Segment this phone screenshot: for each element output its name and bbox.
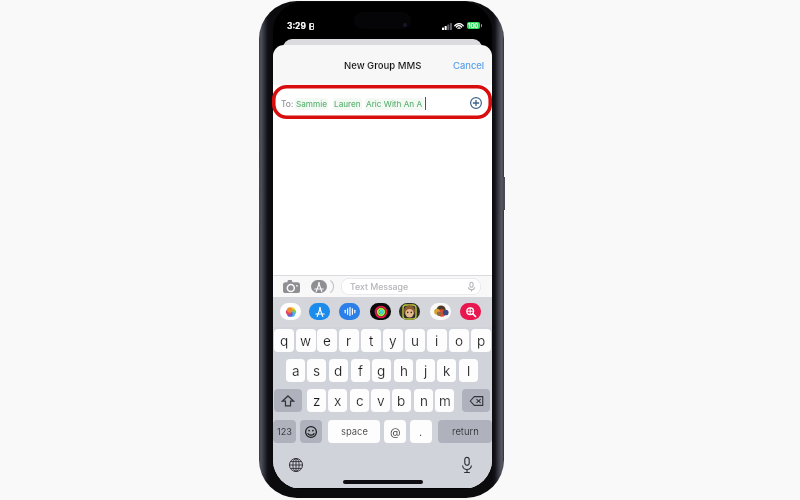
button[interactable]: r xyxy=(339,329,359,352)
staticText: return xyxy=(452,426,479,437)
button[interactable]: v xyxy=(371,389,390,412)
button[interactable]: e xyxy=(317,329,337,352)
staticText: 123 xyxy=(277,426,293,437)
staticText: u xyxy=(411,333,419,349)
button[interactable]: t xyxy=(361,329,381,352)
staticText: o xyxy=(455,333,464,349)
staticText: Aric With An A xyxy=(366,99,423,109)
staticText: e xyxy=(323,333,331,349)
button[interactable]: Sammie xyxy=(296,99,327,109)
button[interactable]: s xyxy=(307,359,326,382)
staticText: a xyxy=(292,363,300,379)
staticText: d xyxy=(334,363,343,379)
button[interactable]: i xyxy=(427,329,447,352)
button[interactable]: Space xyxy=(328,420,380,443)
button[interactable]: Text Message xyxy=(341,278,481,295)
staticText: y xyxy=(389,333,397,349)
staticText: t xyxy=(369,333,374,349)
button[interactable]: Cancel xyxy=(445,56,492,75)
staticText: n xyxy=(420,393,428,409)
button[interactable]: h xyxy=(394,359,413,382)
staticText: v xyxy=(377,393,385,409)
staticText: 3:29 xyxy=(287,21,306,31)
button[interactable]: Search xyxy=(460,303,481,320)
staticText: x xyxy=(334,393,342,409)
button[interactable]: m xyxy=(435,389,454,412)
staticText: f xyxy=(358,363,363,379)
staticText: c xyxy=(356,393,364,409)
button[interactable]: g xyxy=(372,359,391,382)
staticText: k xyxy=(443,363,451,379)
button[interactable]: Recent Photos xyxy=(430,303,451,320)
staticText: To: xyxy=(281,99,294,109)
button[interactable]: d xyxy=(329,359,348,382)
button[interactable]: k xyxy=(437,359,456,382)
button[interactable]: Audio Message xyxy=(339,303,360,320)
button[interactable]: j xyxy=(416,359,435,382)
staticText: z xyxy=(313,393,321,409)
staticText: m xyxy=(439,393,451,409)
button[interactable]: y xyxy=(383,329,403,352)
button[interactable]: p xyxy=(471,329,491,352)
button[interactable]: Backspace xyxy=(462,389,490,412)
staticText: h xyxy=(400,363,408,379)
button[interactable]: b xyxy=(392,389,411,412)
staticText: space xyxy=(341,426,368,437)
button[interactable]: Change keyboard xyxy=(289,458,303,472)
button[interactable]: Shift xyxy=(274,389,302,412)
staticText: w xyxy=(300,333,312,349)
staticText: . xyxy=(419,425,423,438)
button[interactable]: Dictation xyxy=(462,457,472,473)
button[interactable]: u xyxy=(405,329,425,352)
button[interactable]: Period xyxy=(410,420,432,443)
button[interactable]: Emoji xyxy=(300,420,322,443)
button[interactable]: Lauren xyxy=(334,99,361,109)
button[interactable]: c xyxy=(350,389,369,412)
staticText: l xyxy=(467,363,471,379)
button[interactable]: Return xyxy=(438,420,492,443)
staticText: 100 xyxy=(468,22,479,29)
staticText: @ xyxy=(390,425,401,438)
button[interactable]: Photos xyxy=(280,303,301,320)
staticText: Text Message xyxy=(350,281,409,292)
staticText: r xyxy=(346,333,352,349)
button[interactable]: App Store xyxy=(311,280,327,293)
button[interactable]: o xyxy=(449,329,469,352)
staticText: q xyxy=(280,333,289,349)
button[interactable]: Camera xyxy=(283,278,300,295)
button[interactable]: Numbers xyxy=(273,420,296,443)
button[interactable]: a xyxy=(286,359,305,382)
staticText: Sammie xyxy=(296,99,327,109)
button[interactable]: l xyxy=(459,359,478,382)
button[interactable]: At sign xyxy=(384,420,406,443)
staticText: g xyxy=(377,363,386,379)
staticText: New Group MMS xyxy=(344,60,422,71)
button[interactable]: f xyxy=(351,359,370,382)
button[interactable]: w xyxy=(296,329,316,352)
staticText: b xyxy=(397,393,406,409)
button[interactable]: Aric With An A xyxy=(366,99,423,109)
staticText: Lauren xyxy=(334,99,361,109)
button[interactable]: App Store xyxy=(309,303,330,320)
button[interactable]: q xyxy=(274,329,294,352)
button[interactable]: x xyxy=(328,389,347,412)
button[interactable]: Memoji xyxy=(399,303,420,320)
button[interactable]: n xyxy=(414,389,433,412)
button[interactable]: z xyxy=(307,389,326,412)
staticText: j xyxy=(424,363,428,379)
button[interactable]: Fitness xyxy=(370,303,391,320)
staticText: i xyxy=(435,333,439,349)
staticText: s xyxy=(313,363,321,379)
button[interactable]: Add contact xyxy=(468,95,484,111)
staticText: p xyxy=(477,333,486,349)
